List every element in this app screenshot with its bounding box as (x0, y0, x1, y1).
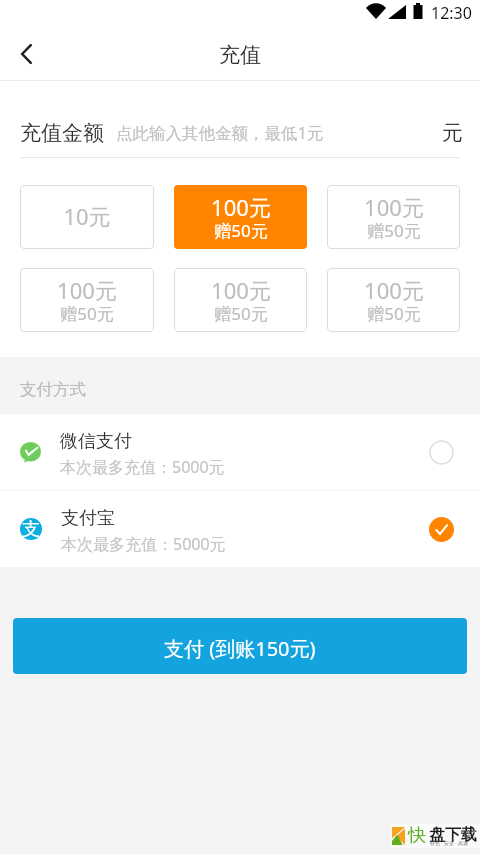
button[interactable]: 100元 (174, 268, 307, 332)
button[interactable]: 100元 (327, 185, 460, 249)
staticText: 赠50元 (367, 219, 421, 242)
staticText: 充值 (219, 42, 261, 68)
staticText: 充值金额 (20, 120, 104, 146)
staticText: 100元 (211, 275, 271, 305)
button[interactable]: 100元 (20, 268, 154, 332)
staticText: 本次最多充值：5000元 (61, 533, 226, 555)
staticText: 赠50元 (60, 302, 114, 325)
button[interactable]: 支 (0, 491, 480, 567)
button[interactable]: 充值金额 (0, 81, 480, 158)
staticText: 支付方式 (20, 379, 86, 400)
staticText: 支付 (到账150元) (164, 635, 316, 662)
staticText: 支 (22, 518, 40, 540)
staticText: 本次最多充值：5000元 (60, 456, 225, 478)
staticText: 点此输入其他金额，最低1元 (116, 121, 324, 144)
button[interactable]: Selected payment method (429, 517, 454, 542)
staticText: 赠50元 (367, 302, 421, 325)
staticText: 微信支付 (60, 430, 132, 453)
button[interactable]: Back (0, 30, 52, 81)
staticText: 100元 (364, 192, 424, 222)
button[interactable]: 10元 (20, 185, 154, 249)
staticText: 支付宝 (61, 507, 115, 530)
staticText: 快 (408, 824, 426, 847)
staticText: 盘下载 (429, 825, 477, 845)
button[interactable]: 微信支付 (0, 414, 480, 490)
button[interactable]: Select payment method (429, 440, 454, 465)
staticText: 100元 (57, 275, 117, 305)
staticText: 100元 (364, 275, 424, 305)
staticText: 10元 (63, 201, 111, 231)
button[interactable]: 支付 (到账150元) (13, 618, 467, 674)
staticText: 100元 (211, 192, 271, 222)
staticText: 12:30 (431, 2, 472, 24)
staticText: 赠50元 (214, 219, 268, 242)
button[interactable]: 100元 (327, 268, 460, 332)
button[interactable]: 100元 (174, 185, 307, 249)
staticText: 元 (442, 120, 463, 146)
staticText: 赠50元 (214, 302, 268, 325)
staticText: 特色 · 安全 · 高速 (430, 840, 468, 847)
